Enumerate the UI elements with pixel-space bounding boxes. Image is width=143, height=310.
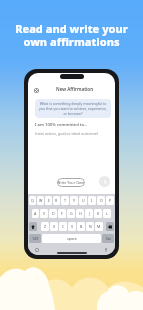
button[interactable]: X [50,222,58,231]
button[interactable]: R [53,196,60,205]
staticText: Write Your Own [57,180,85,185]
button[interactable]: U [79,196,87,205]
button[interactable]: F [58,209,66,218]
button[interactable]: Next [99,176,110,187]
staticText: F [61,211,63,216]
button[interactable]: Go [102,234,114,243]
button[interactable]: Q [29,196,36,205]
staticText: H [79,211,82,216]
staticText: Z [44,224,47,229]
staticText: I am 100% committed to... [35,122,88,128]
staticText: W [39,198,43,203]
button[interactable]: I [88,196,96,205]
button[interactable]: 123 [29,234,41,243]
button[interactable] [106,222,114,231]
button[interactable]: Y [70,196,78,205]
button[interactable]: T [61,196,69,205]
staticText: E [48,198,50,203]
staticText: 123 [32,236,39,241]
button[interactable] [29,222,37,231]
staticText: P [109,198,112,203]
button[interactable]: N [86,222,94,231]
staticText: A [34,211,37,216]
staticText: G [70,211,73,216]
button[interactable]: A [32,209,39,218]
staticText: New Affirmation [56,86,94,92]
button[interactable]: S [40,209,48,218]
staticText: space [67,236,77,241]
staticText: K [97,211,100,216]
staticText: O [100,198,103,203]
button[interactable]: Write Your Own [57,178,85,187]
button[interactable]: G [67,209,75,218]
staticText: N [89,224,92,229]
staticText: Y [73,198,76,203]
staticText: S [43,211,45,216]
button[interactable]: E [45,196,52,205]
staticText: Read and write your own affirmations [0,21,143,49]
button[interactable]: space [42,234,101,243]
staticText: R [55,198,58,203]
staticText: T [64,198,66,203]
button[interactable]: O [97,196,105,205]
staticText: What is something deeply meaningful to y… [35,101,111,116]
staticText: D [52,211,55,216]
staticText: M [97,224,101,229]
staticText: J [89,211,90,216]
button[interactable]: D [49,209,57,218]
button[interactable]: P [106,196,114,205]
button[interactable]: J [85,209,93,218]
button[interactable]: H [76,209,84,218]
button[interactable]: Dictate [104,248,108,252]
button[interactable]: M [95,222,103,231]
button[interactable]: Emoji keyboard [35,248,39,252]
staticText: U [82,198,85,203]
staticText: Q [31,198,34,203]
staticText: X [53,224,56,229]
staticText: V [71,224,74,229]
button[interactable]: L [103,209,111,218]
staticText: (next action, goal or ideal outcome) [35,131,98,136]
button[interactable]: K [94,209,102,218]
staticText: I [91,198,93,203]
button[interactable]: B [77,222,85,231]
staticText: Go [106,236,111,241]
button[interactable]: Z [41,222,49,231]
staticText: B [80,224,83,229]
button[interactable]: Close [34,88,39,93]
button[interactable]: W [37,196,44,205]
staticText: C [62,224,65,229]
button[interactable]: C [59,222,67,231]
staticText: L [106,211,108,216]
button[interactable]: V [68,222,76,231]
